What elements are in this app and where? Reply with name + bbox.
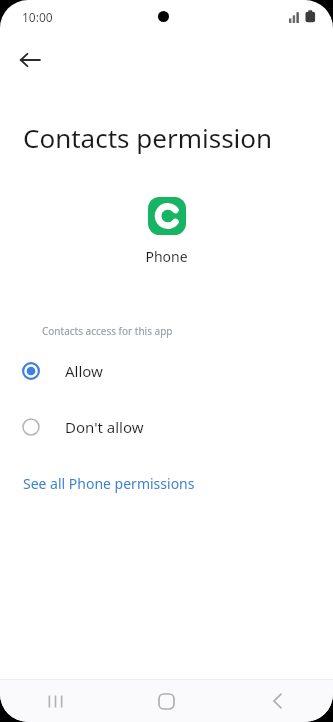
staticText: 10:00	[22, 9, 53, 25]
button[interactable]: Back	[8, 38, 52, 82]
staticText: Contacts access for this app	[42, 324, 173, 338]
staticText: See all Phone permissions	[23, 474, 195, 493]
button[interactable]: Back	[222, 680, 333, 722]
staticText: Phone	[145, 247, 188, 266]
staticText: Contacts permission	[23, 120, 313, 155]
staticText: Allow	[65, 361, 103, 381]
button[interactable]: See all Phone permissions	[0, 468, 333, 499]
button[interactable]: Recent apps	[0, 680, 111, 722]
button[interactable]: Don't allow	[0, 410, 333, 444]
button[interactable]: Home	[111, 680, 222, 722]
button[interactable]: Allow	[0, 354, 333, 388]
staticText: Don't allow	[65, 417, 144, 437]
